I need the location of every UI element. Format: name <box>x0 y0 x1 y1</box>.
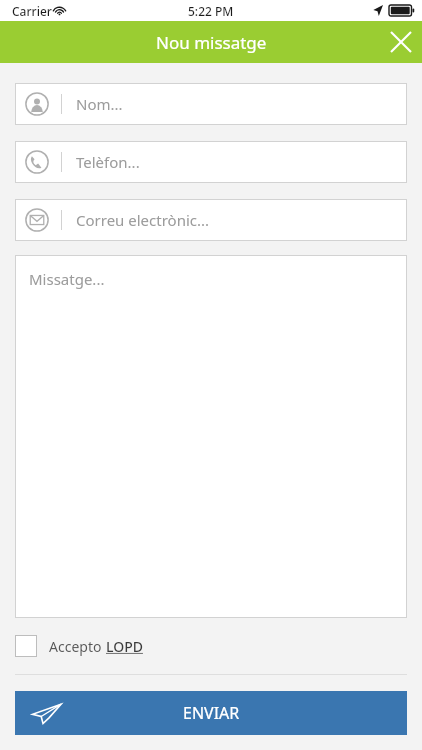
button[interactable]: Missatge... <box>15 255 407 618</box>
button[interactable]: Accepto <box>15 635 407 657</box>
staticText: Correu electrònic... <box>76 210 210 230</box>
staticText: Nom... <box>76 94 123 114</box>
button[interactable]: ENVIAR <box>15 691 407 735</box>
staticText: LOPD <box>106 637 143 656</box>
staticText: ENVIAR <box>183 702 240 724</box>
button[interactable]: Telèfon... <box>15 141 407 183</box>
staticText: Accepto <box>49 637 106 656</box>
button[interactable]: Close <box>380 21 422 63</box>
button[interactable]: Correu electrònic... <box>15 199 407 241</box>
staticText: Carrier <box>12 3 52 19</box>
staticText: Missatge... <box>29 269 105 289</box>
button[interactable]: Nom... <box>15 83 407 125</box>
staticText: 5:22 PM <box>188 3 234 19</box>
staticText: Telèfon... <box>76 152 140 172</box>
staticText: Nou missatge <box>156 31 267 54</box>
